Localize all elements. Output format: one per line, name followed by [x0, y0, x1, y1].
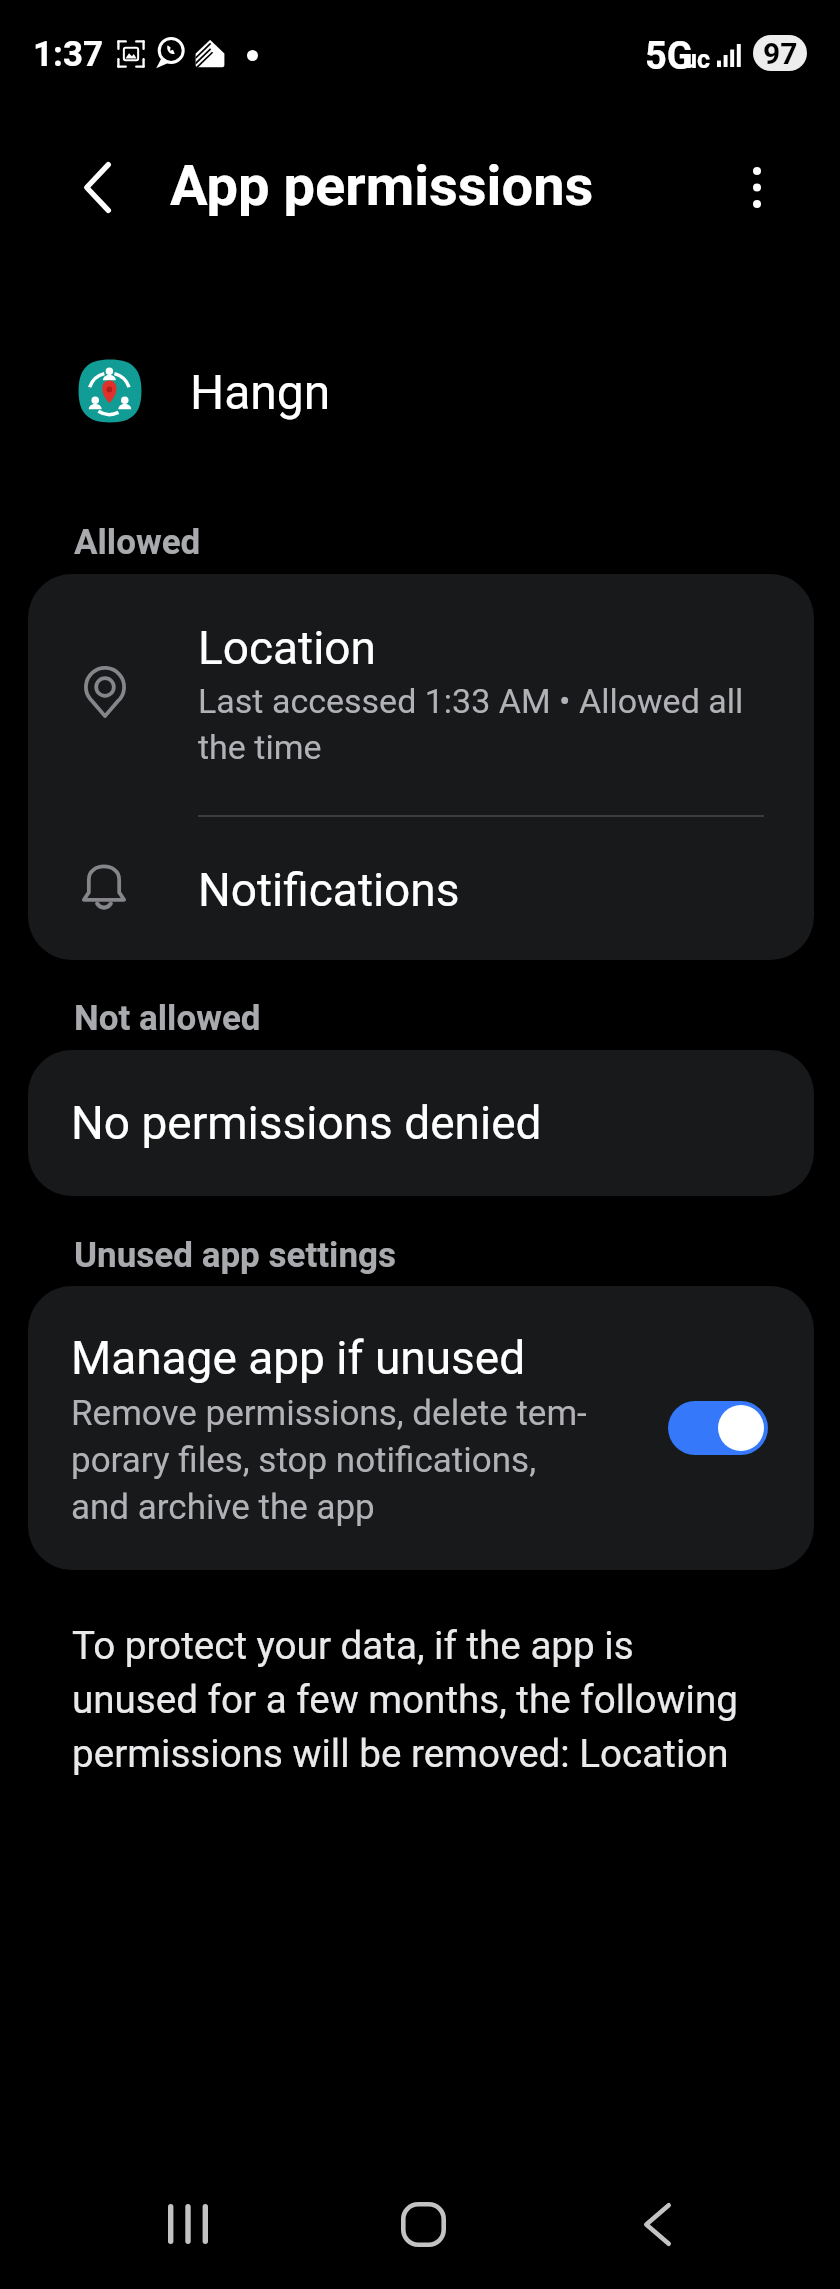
- staticText: 97: [763, 36, 798, 71]
- staticText: uc: [683, 45, 711, 74]
- button[interactable]: Manage app if unused: [28, 1286, 814, 1570]
- staticText: Unused app settings: [74, 1235, 396, 1276]
- staticText: Last accessed 1:33 AM • Allowed all the …: [198, 681, 744, 768]
- staticText: Manage app if unused: [71, 1331, 526, 1385]
- button[interactable]: Navigate up: [57, 147, 137, 227]
- staticText: To protect your data, if the app is unus…: [72, 1623, 744, 1776]
- button[interactable]: More options: [717, 147, 797, 227]
- button[interactable]: Recent apps: [148, 2184, 228, 2264]
- staticText: Not allowed: [74, 998, 261, 1039]
- button[interactable]: Notifications: [28, 817, 814, 960]
- staticText: Location: [198, 621, 376, 675]
- staticText: 1:37: [33, 34, 104, 75]
- button[interactable]: Home: [383, 2184, 463, 2264]
- button[interactable]: No permissions denied: [28, 1050, 814, 1196]
- staticText: Allowed: [74, 522, 201, 563]
- staticText: No permissions denied: [71, 1096, 542, 1150]
- staticText: App permissions: [170, 153, 594, 219]
- staticText: 5G: [645, 34, 693, 79]
- staticText: Notifications: [198, 863, 460, 917]
- staticText: Remove permissions, delete tem- porary f…: [71, 1393, 587, 1528]
- button[interactable]: Location: [28, 574, 814, 815]
- button[interactable]: Back: [617, 2184, 697, 2264]
- button[interactable]: Hangn: [0, 340, 840, 440]
- staticText: Hangn: [190, 364, 331, 420]
- button[interactable]: Manage app if unused: [668, 1401, 768, 1455]
